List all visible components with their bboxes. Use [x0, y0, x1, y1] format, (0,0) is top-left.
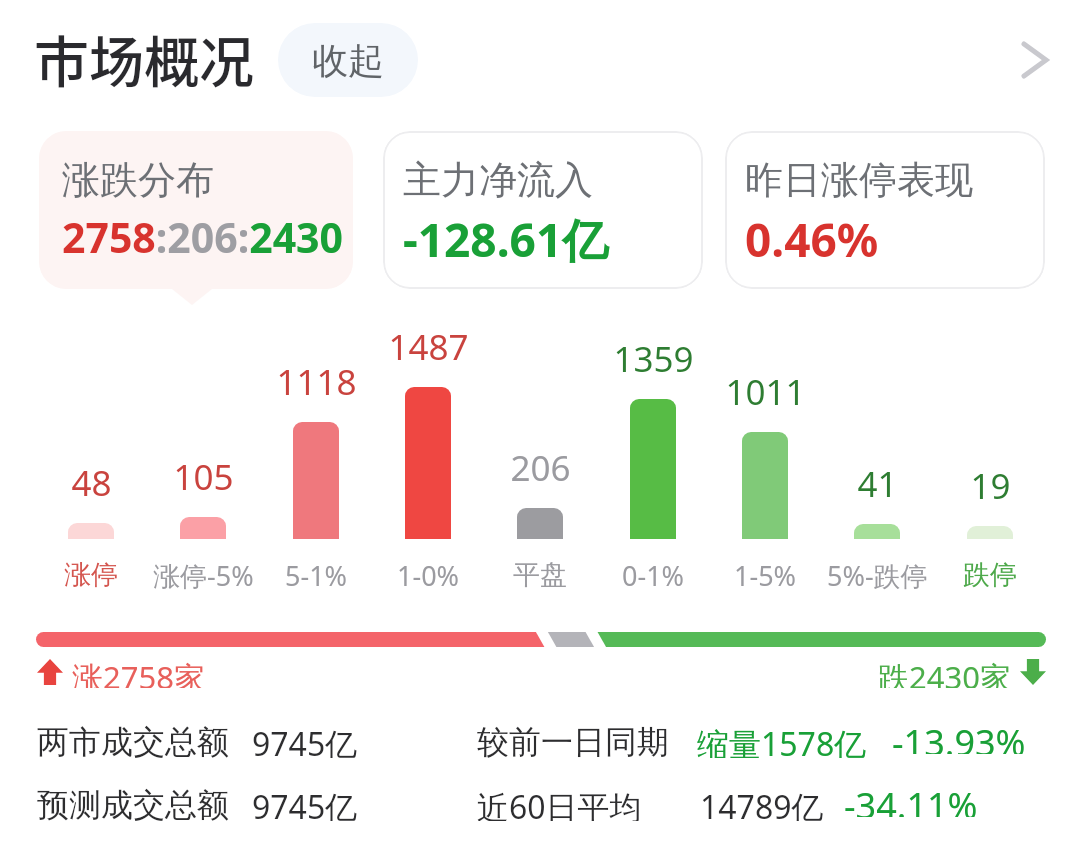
staticText: 5-1% — [285, 557, 348, 593]
staticText: 市场概况 — [34, 18, 255, 98]
staticText: -34.11% — [844, 781, 978, 817]
staticText: 105 — [173, 453, 234, 501]
staticText: 涨停 — [64, 558, 118, 592]
staticText: 41 — [857, 460, 898, 508]
staticText: 跌2430家 — [878, 656, 1011, 688]
staticText: 1487 — [388, 323, 469, 371]
staticText: 0-1% — [622, 557, 685, 593]
staticText: 2758:206:2430 — [62, 209, 344, 265]
button[interactable]: 跌2430家 — [878, 656, 1046, 688]
staticText: 48 — [71, 459, 112, 507]
staticText: 主力净流入 — [403, 156, 593, 204]
staticText: 预测成交总额 — [37, 785, 229, 821]
button[interactable]: 昨日涨停表现 — [725, 131, 1045, 289]
staticText: -13.93% — [892, 718, 1026, 754]
staticText: 涨跌分布 — [62, 156, 214, 204]
staticText: 涨停-5% — [153, 557, 254, 593]
staticText: 206 — [510, 444, 571, 492]
staticText: 缩量1578亿 — [697, 722, 867, 758]
staticText: 1-5% — [734, 557, 797, 593]
button[interactable]: 涨跌分布 — [39, 131, 353, 289]
button[interactable]: 收起 — [278, 23, 418, 97]
staticText: 9745亿 — [252, 785, 358, 821]
staticText: 1359 — [613, 335, 694, 383]
staticText: 9745亿 — [252, 722, 358, 758]
staticText: 涨2758家 — [72, 656, 205, 688]
staticText: 1011 — [725, 368, 806, 416]
staticText: 跌停 — [963, 558, 1017, 592]
staticText: 14789亿 — [700, 785, 824, 821]
staticText: 收起 — [312, 38, 384, 83]
staticText: 昨日涨停表现 — [745, 156, 973, 204]
staticText: 1-0% — [397, 557, 460, 593]
staticText: 0.46% — [745, 208, 879, 271]
button[interactable]: 主力净流入 — [383, 131, 703, 289]
staticText: 两市成交总额 — [37, 722, 229, 758]
staticText: 5%-跌停 — [827, 557, 928, 593]
button[interactable]: 涨2758家 — [37, 656, 205, 688]
button[interactable]: 市场概况 — [34, 18, 255, 98]
staticText: 19 — [970, 462, 1011, 510]
staticText: 1118 — [276, 358, 357, 406]
staticText: 较前一日同期 — [477, 722, 669, 758]
button[interactable]: 展开 — [1000, 25, 1070, 95]
staticText: 近60日平均 — [477, 785, 642, 821]
staticText: 平盘 — [513, 558, 567, 592]
staticText: -128.61亿 — [403, 208, 609, 271]
